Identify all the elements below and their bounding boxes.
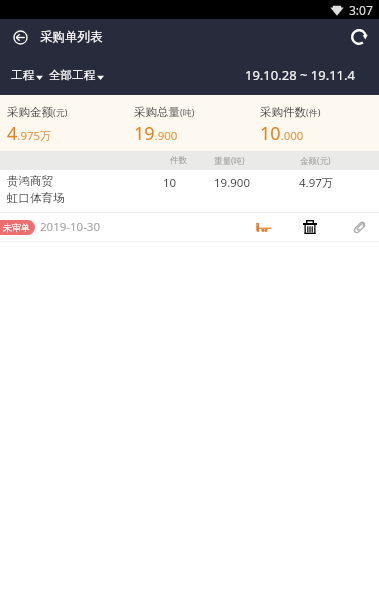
staticText: 采购件数(件): [260, 105, 321, 119]
staticText: 金额(元): [300, 155, 331, 167]
button[interactable]: 全部工程: [46, 63, 107, 87]
staticText: 4.975万: [7, 121, 52, 146]
staticText: 采购金额(元): [7, 105, 68, 119]
staticText: 19.900: [134, 121, 178, 146]
staticText: 全部工程: [49, 68, 95, 82]
staticText: 10: [163, 175, 177, 191]
staticText: 3:07: [349, 2, 373, 18]
staticText: 件数: [170, 155, 187, 166]
staticText: 采购单列表: [40, 29, 103, 45]
staticText: 贵鸿商贸: [7, 174, 53, 188]
staticText: 10.000: [260, 121, 304, 146]
staticText: 19.10.28 ~ 19.11.4: [245, 66, 355, 84]
button[interactable]: 工程: [8, 63, 46, 87]
staticText: 采购总量(吨): [134, 105, 195, 119]
staticText: 重量(吨): [214, 155, 245, 167]
button[interactable]: 未审单: [0, 220, 35, 235]
staticText: 工程: [11, 68, 34, 82]
staticText: 19.900: [214, 175, 250, 191]
button[interactable]: Back: [6, 23, 35, 52]
staticText: 未审单: [3, 222, 30, 233]
button[interactable]: Delivery: [249, 218, 275, 237]
button[interactable]: Refresh: [348, 26, 370, 48]
button[interactable]: 贵鸿商贸: [0, 170, 379, 242]
button[interactable]: Delete: [298, 214, 322, 240]
staticText: 虹口体育场: [7, 191, 65, 205]
staticText: 2019-10-30: [40, 219, 101, 235]
button[interactable]: Attachment: [347, 215, 372, 240]
staticText: 4.97万: [299, 175, 334, 191]
